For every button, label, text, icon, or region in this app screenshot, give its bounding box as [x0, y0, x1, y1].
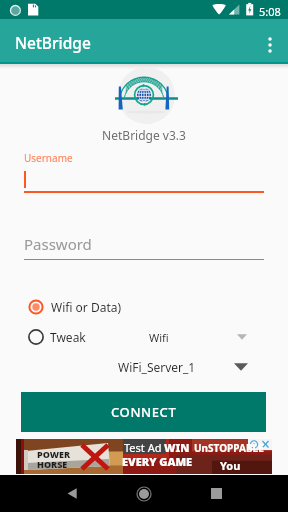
staticText: UnSTOPPABLE: [194, 441, 264, 455]
staticText: You: [220, 458, 241, 473]
staticText: Password: [24, 234, 92, 254]
staticText: Wifi: [149, 330, 169, 345]
staticText: Tweak: [50, 329, 86, 345]
other: Connection type dropdown: [235, 330, 249, 344]
staticText: WiFi_Server_1: [118, 359, 196, 375]
button[interactable]: Wifi or Data): [24, 294, 122, 320]
staticText: WIN: [164, 440, 190, 455]
staticText: EVERY GAME: [122, 454, 193, 469]
staticText: 5:08: [259, 4, 281, 19]
button[interactable]: Recent apps: [196, 475, 236, 512]
button[interactable]: Tweak: [24, 324, 86, 350]
staticText: CONNECT: [111, 403, 177, 421]
button[interactable]: Back: [52, 475, 92, 512]
staticText: Username: [24, 151, 73, 165]
button[interactable]: Wifi: [110, 324, 258, 350]
staticText: NetBridge: [15, 32, 91, 53]
button[interactable]: [24, 166, 264, 194]
button[interactable]: Advertisement: [16, 439, 272, 474]
other: Server dropdown: [233, 359, 249, 375]
button[interactable]: WiFi_Server_1: [110, 354, 258, 380]
staticText: Test Ad: [124, 440, 162, 455]
button[interactable]: More options: [252, 27, 288, 63]
staticText: POWER: [37, 448, 71, 460]
button[interactable]: CONNECT: [21, 392, 266, 432]
button[interactable]: Home: [124, 475, 164, 512]
button[interactable]: Password: [24, 234, 264, 260]
staticText: Wifi or Data): [51, 299, 122, 315]
staticText: NetBridge v3.3: [0, 127, 288, 143]
staticText: HORSE: [37, 458, 68, 470]
